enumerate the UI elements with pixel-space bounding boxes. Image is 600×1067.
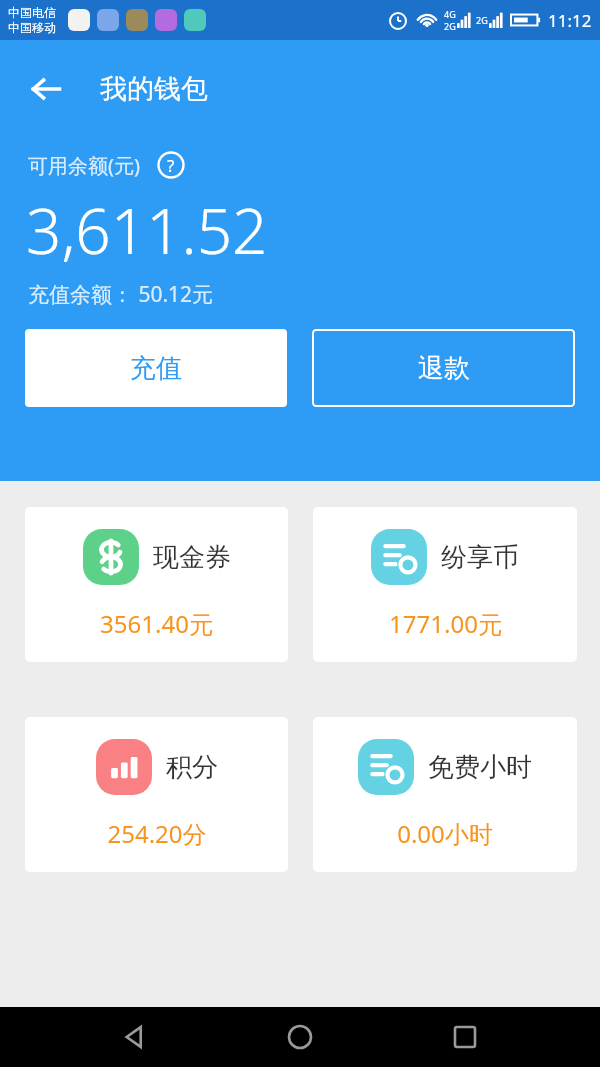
button[interactable]: Home — [270, 1007, 330, 1067]
button[interactable]: Recent apps — [435, 1007, 495, 1067]
staticText: 254.20分 — [107, 817, 207, 850]
staticText: 4G — [444, 8, 456, 20]
button[interactable]: 充值 — [25, 329, 287, 407]
staticText: 2G — [444, 20, 456, 32]
button[interactable]: 积分 — [25, 717, 288, 872]
staticText: 积分 — [166, 751, 218, 784]
staticText: 3,611.52 — [26, 188, 268, 272]
staticText: 纷享币 — [441, 541, 519, 574]
staticText: 现金券 — [153, 541, 231, 574]
staticText: 3561.40元 — [100, 607, 213, 640]
staticText: 中国电信 — [8, 5, 56, 20]
staticText: ? — [167, 154, 175, 177]
staticText: 0.00小时 — [397, 817, 493, 850]
staticText: 中国移动 — [8, 20, 56, 35]
button[interactable]: 现金券 — [25, 507, 288, 662]
staticText: 我的钱包 — [100, 72, 208, 106]
button[interactable]: 纷享币 — [313, 507, 577, 662]
staticText: 免费小时 — [428, 751, 532, 784]
staticText: 2G — [476, 14, 488, 26]
button[interactable]: 免费小时 — [313, 717, 577, 872]
staticText: 1771.00元 — [389, 607, 502, 640]
staticText: 退款 — [418, 352, 470, 385]
staticText: 可用余额(元) — [28, 152, 140, 179]
button[interactable]: 退款 — [312, 329, 575, 407]
staticText: 充值 — [130, 352, 182, 385]
staticText: 11:12 — [548, 9, 592, 32]
button[interactable]: Back — [18, 61, 74, 117]
staticText: 充值余额： 50.12元 — [28, 280, 214, 309]
button[interactable]: Back — [105, 1007, 165, 1067]
button[interactable]: Help — [154, 148, 188, 182]
